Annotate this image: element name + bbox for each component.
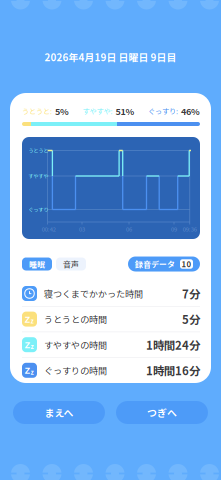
staticText: うとうと <box>28 147 48 154</box>
staticText: 5% <box>55 104 69 117</box>
button[interactable]: 寝つくまでかかった時間 <box>22 281 200 306</box>
staticText: 10 <box>181 258 191 270</box>
staticText: すやすやの時間 <box>44 338 107 351</box>
button[interactable]: Z <box>22 358 200 383</box>
staticText: ぐっすり <box>28 206 48 213</box>
button[interactable]: Z <box>22 307 200 332</box>
staticText: 06 <box>126 225 132 233</box>
staticText: すやすや: <box>82 106 112 116</box>
button[interactable]: まえへ <box>13 401 105 424</box>
staticText: つぎへ <box>147 405 177 420</box>
button[interactable]: つぎへ <box>116 401 208 424</box>
staticText: 音声 <box>63 258 79 270</box>
staticText: 5分 <box>182 311 200 327</box>
staticText: ぐっすりの時間 <box>44 364 107 377</box>
staticText: うとうと: <box>22 106 52 116</box>
button[interactable]: 音声 <box>56 257 86 270</box>
staticText: ぐっすり: <box>148 106 178 116</box>
staticText: 09:36 <box>183 225 197 233</box>
staticText: Z <box>24 337 30 351</box>
staticText: 1時間16分 <box>146 362 200 379</box>
staticText: Z <box>24 363 30 376</box>
staticText: 録音データ <box>135 258 175 270</box>
button[interactable]: Z <box>22 332 200 357</box>
staticText: 03 <box>79 225 85 233</box>
staticText: 7分 <box>182 285 200 302</box>
staticText: z <box>30 342 33 351</box>
staticText: 睡眠 <box>29 258 45 270</box>
button[interactable]: 録音データ <box>128 256 200 271</box>
staticText: 2026年4月19日 日曜日 9日目 <box>44 50 176 64</box>
staticText: z <box>30 367 33 377</box>
staticText: 46% <box>181 104 200 117</box>
button[interactable]: 睡眠 <box>22 257 52 270</box>
staticText: 00:42 <box>42 225 56 233</box>
staticText: 寝つくまでかかった時間 <box>44 287 143 300</box>
staticText: 51% <box>115 104 134 117</box>
staticText: うとうとの時間 <box>44 312 107 326</box>
staticText: まえへ <box>44 405 73 420</box>
staticText: 1時間24分 <box>146 336 200 353</box>
staticText: 09 <box>171 225 177 233</box>
staticText: z <box>30 316 33 325</box>
staticText: すやすや <box>28 172 48 180</box>
staticText: Z <box>24 312 30 325</box>
